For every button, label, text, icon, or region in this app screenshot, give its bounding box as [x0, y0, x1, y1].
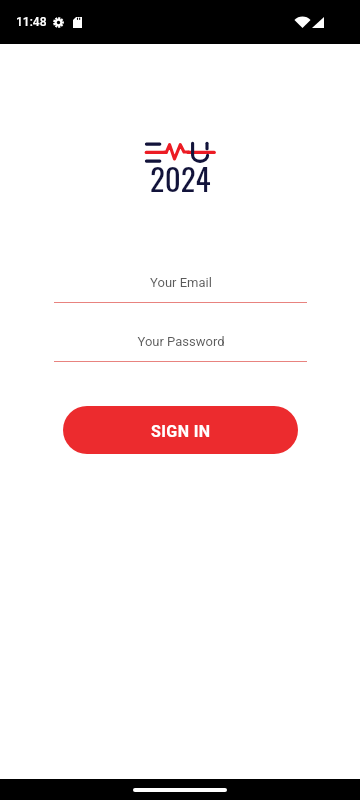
staticText: Your Email: [150, 275, 212, 290]
button[interactable]: SIGN IN: [63, 406, 298, 454]
button[interactable]: Your Password: [54, 328, 307, 362]
staticText: 2024: [150, 155, 211, 198]
button[interactable]: Your Email: [54, 269, 307, 303]
staticText: Your Password: [137, 334, 225, 349]
staticText: 11:48: [16, 15, 47, 29]
staticText: SIGN IN: [151, 422, 211, 441]
